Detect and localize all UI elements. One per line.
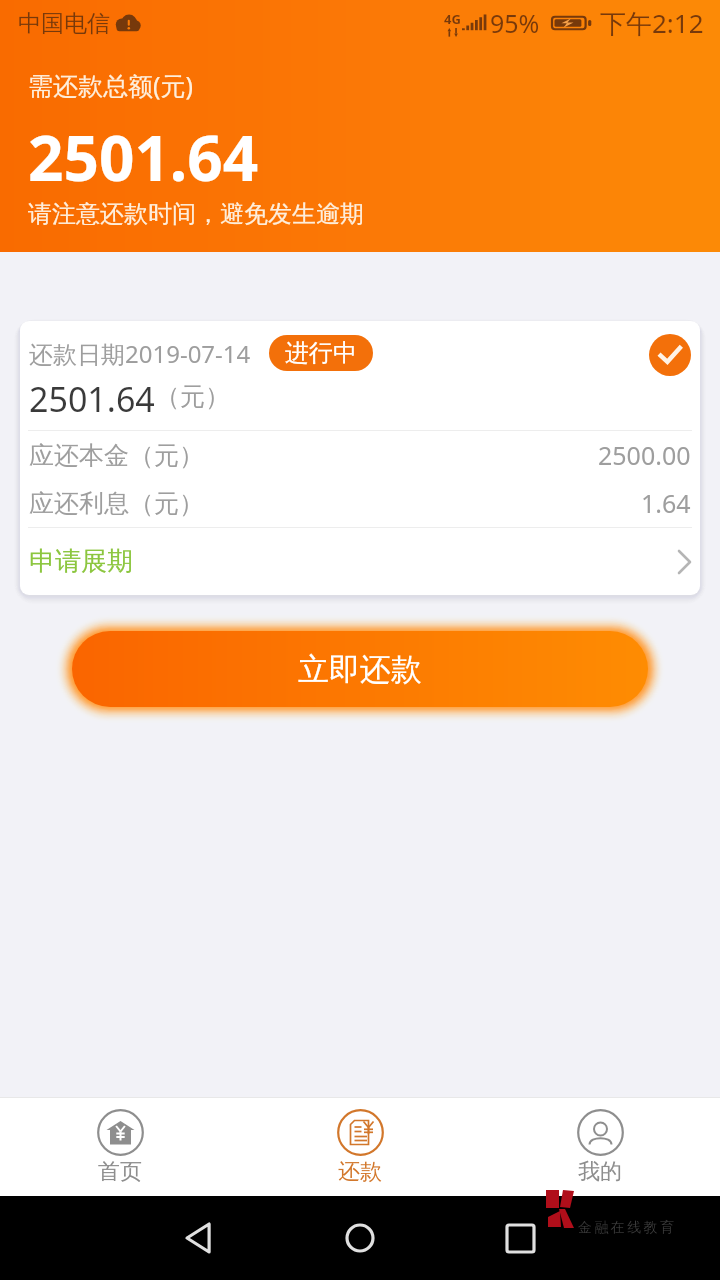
staticText: 立即还款 — [298, 650, 422, 689]
staticText: 2500.00 — [598, 438, 691, 472]
staticText: 2501.64 — [29, 376, 155, 417]
button[interactable]: Back — [174, 1212, 226, 1264]
button[interactable]: 还款 — [240, 1098, 480, 1196]
button[interactable]: 进行中 — [269, 335, 373, 371]
staticText: 金融在线教育 — [578, 1219, 677, 1237]
staticText: 首页 — [98, 1158, 142, 1186]
staticText: 应还本金（元） — [29, 440, 204, 471]
staticText: 95% — [490, 6, 540, 40]
staticText: 4G — [444, 10, 461, 28]
staticText: 2501.64 — [28, 115, 259, 199]
staticText: 还款 — [338, 1158, 382, 1186]
button[interactable]: 立即还款 — [72, 631, 648, 707]
staticText: 进行中 — [285, 338, 357, 368]
staticText: 申请展期 — [29, 545, 133, 578]
staticText: 下午2:12 — [600, 5, 704, 41]
button[interactable]: Paid — [649, 334, 691, 376]
button[interactable]: 申请展期 — [20, 528, 700, 595]
staticText: 请注意还款时间，避免发生逾期 — [28, 199, 364, 229]
button[interactable]: Home — [334, 1212, 386, 1264]
staticText: 1.64 — [641, 486, 691, 520]
button[interactable]: 首页 — [0, 1098, 240, 1196]
button[interactable]: 我的 — [480, 1098, 720, 1196]
staticText: 还款日期2019-07-14 — [29, 337, 251, 370]
staticText: （元） — [155, 381, 230, 412]
staticText: 需还款总额(元) — [28, 68, 194, 102]
staticText: 中国电信 — [18, 9, 110, 38]
staticText: 应还利息（元） — [29, 488, 204, 519]
staticText: 我的 — [578, 1158, 622, 1186]
button[interactable]: Recent apps — [494, 1212, 546, 1264]
